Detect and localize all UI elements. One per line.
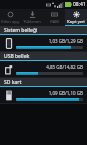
staticText: 08:41 bbox=[73, 1, 86, 8]
button[interactable]: Storage bbox=[65, 9, 87, 26]
button[interactable]: 4,85 GB/14,82 GB bbox=[0, 61, 87, 77]
button[interactable]: 1,03 GB/1,29 GB bbox=[0, 35, 87, 51]
other: RAM bbox=[51, 11, 58, 18]
staticText: RAM bbox=[50, 19, 59, 24]
button[interactable]: Active applications bbox=[0, 9, 21, 26]
staticText: 1,09 GB/1,10 GB bbox=[16, 90, 83, 96]
staticText: USB bellek bbox=[4, 53, 30, 60]
button[interactable]: 1,09 GB/1,10 GB bbox=[0, 87, 87, 103]
other: Active applications bbox=[7, 11, 14, 18]
button[interactable]: RAM bbox=[43, 9, 65, 26]
staticText: Kayıt yeri bbox=[67, 19, 85, 24]
staticText: 1,03 GB/1,29 GB bbox=[16, 38, 83, 44]
button[interactable]: Downloaded bbox=[21, 9, 43, 26]
other: Storage bbox=[73, 11, 80, 18]
staticText: Etkin uyg. bbox=[1, 19, 20, 24]
staticText: Sistem belleği bbox=[4, 27, 38, 34]
other: Downloaded bbox=[29, 11, 36, 18]
staticText: Yüklenen bbox=[23, 19, 41, 24]
staticText: SD kart bbox=[4, 79, 22, 86]
staticText: 4,85 GB/14,82 GB bbox=[16, 64, 83, 70]
